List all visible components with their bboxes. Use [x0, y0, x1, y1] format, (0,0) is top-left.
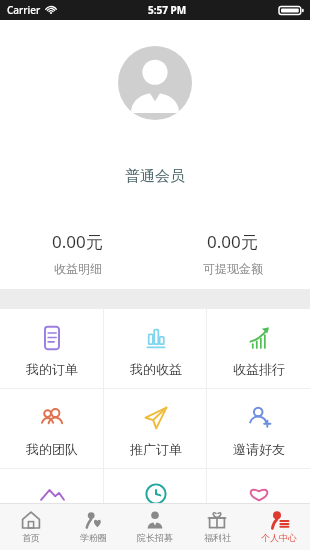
button[interactable]: 0.00元: [155, 230, 310, 276]
staticText: 首页: [22, 532, 40, 543]
staticText: 收益明细: [54, 261, 102, 276]
button[interactable]: Menu item: [104, 469, 207, 503]
button[interactable]: 个人中心: [248, 503, 310, 550]
button[interactable]: 我的订单: [0, 309, 104, 388]
staticText: 0.00元: [207, 230, 258, 253]
staticText: 我的收益: [130, 361, 182, 377]
staticText: 邀请好友: [233, 441, 285, 457]
staticText: 学粉圈: [80, 532, 107, 543]
staticText: 0.00元: [52, 230, 103, 253]
staticText: 福利社: [204, 532, 231, 543]
button[interactable]: 福利社: [186, 503, 248, 550]
button[interactable]: 收益排行: [207, 309, 310, 388]
button[interactable]: 0.00元: [0, 230, 155, 276]
button[interactable]: 我的收益: [104, 309, 207, 388]
button[interactable]: Menu item: [207, 469, 310, 503]
staticText: 我的订单: [26, 361, 78, 377]
staticText: Carrier: [7, 3, 41, 17]
button[interactable]: 推广订单: [104, 389, 207, 468]
button[interactable]: 学粉圈: [62, 503, 124, 550]
button[interactable]: 院长招募: [124, 503, 186, 550]
staticText: 5:57 PM: [148, 3, 187, 17]
button[interactable]: 邀请好友: [207, 389, 310, 468]
button[interactable]: Profile avatar: [118, 46, 192, 120]
staticText: 个人中心: [261, 532, 297, 543]
button[interactable]: 首页: [0, 503, 62, 550]
staticText: 收益排行: [233, 361, 285, 377]
staticText: 可提现金额: [203, 261, 263, 276]
button[interactable]: 我的团队: [0, 389, 104, 468]
staticText: 推广订单: [130, 441, 182, 457]
staticText: 院长招募: [137, 532, 173, 543]
staticText: 我的团队: [26, 441, 78, 457]
staticText: 普通会员: [125, 167, 185, 186]
button[interactable]: Menu item: [0, 469, 104, 503]
